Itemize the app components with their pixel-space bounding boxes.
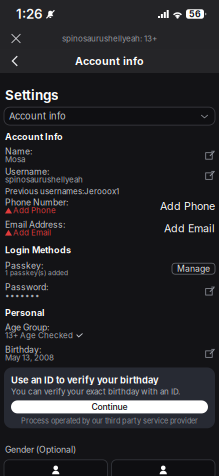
staticText: Add Phone — [13, 206, 56, 215]
staticText: Add Email — [13, 228, 51, 237]
staticText: Name: — [5, 146, 32, 157]
staticText: Account info — [9, 110, 66, 122]
staticText: Continue — [91, 402, 127, 412]
button[interactable]: Female — [111, 460, 215, 476]
staticText: spinosaurushellyeah: 13+ — [62, 34, 157, 43]
staticText: Birthday: — [5, 344, 41, 355]
staticText: You can verify your exact birthday with … — [11, 387, 180, 396]
staticText: Mosa — [5, 155, 25, 164]
staticText: Passkey: — [5, 260, 43, 271]
staticText: Process operated by our third party serv… — [21, 416, 198, 425]
button[interactable]: Close — [0, 28, 27, 49]
staticText: May 13, 2008 — [5, 353, 54, 362]
staticText: Previous usernames:Jerooox1 — [5, 186, 119, 196]
staticText: Add Email — [164, 222, 215, 235]
staticText: 13+ Age Checked — [5, 331, 73, 340]
staticText: 1 passkey(s) added — [5, 269, 68, 277]
staticText: Use an ID to verify your birthday — [11, 374, 159, 386]
button[interactable]: Male — [4, 460, 107, 476]
button[interactable]: Back — [0, 49, 26, 73]
staticText: Add Phone — [160, 200, 215, 213]
staticText: Age Group: — [5, 322, 49, 333]
button[interactable]: Continue — [11, 400, 208, 413]
staticText: Personal — [5, 307, 44, 318]
button[interactable]: Add Phone — [154, 198, 215, 215]
staticText: Account info — [75, 54, 144, 67]
button[interactable]: Edit Password: — [203, 285, 216, 298]
staticText: 56 — [189, 9, 201, 19]
button[interactable]: Add Email — [158, 220, 215, 237]
staticText: 1:26 — [16, 6, 43, 22]
staticText: Phone Number: — [5, 197, 68, 208]
staticText: Email Address: — [5, 219, 65, 230]
staticText: Login Methods — [5, 244, 71, 255]
button[interactable]: Edit Birthday: — [203, 347, 216, 360]
button[interactable]: Edit Username: — [203, 169, 216, 182]
staticText: spinosaurushellyeah — [5, 175, 83, 184]
staticText: Gender (Optional) — [5, 444, 76, 455]
staticText: Settings — [5, 87, 58, 103]
button[interactable]: Manage — [172, 263, 215, 274]
button[interactable]: Edit Name: — [203, 149, 216, 162]
staticText: Username: — [5, 166, 49, 177]
button[interactable]: Account info — [0, 107, 219, 125]
staticText: Account Info — [5, 131, 63, 142]
staticText: ••••••• — [5, 290, 40, 300]
staticText: Manage — [177, 263, 210, 274]
staticText: Password: — [5, 282, 48, 292]
